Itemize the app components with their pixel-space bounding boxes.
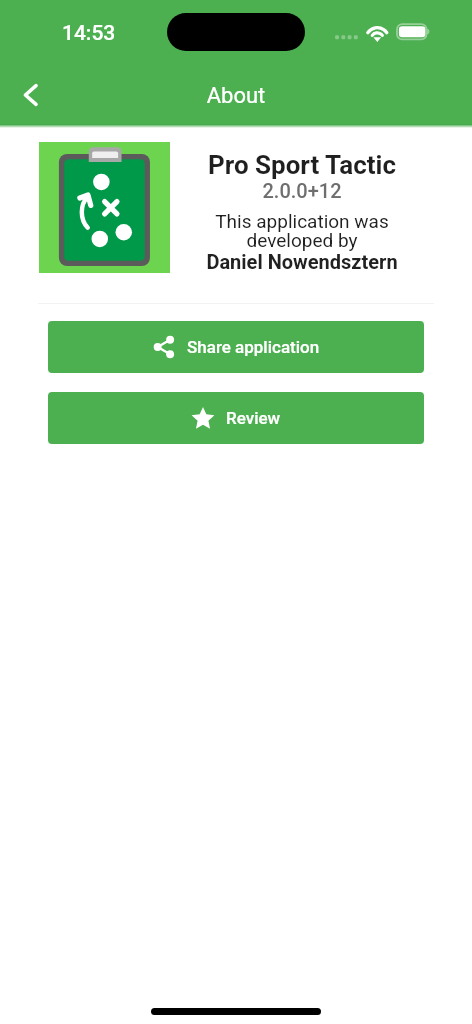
staticText: Pro Sport Tactic — [186, 150, 418, 180]
staticText: This application was developed by — [186, 210, 418, 252]
staticText: 14:53 — [62, 21, 116, 46]
staticText: About — [0, 83, 472, 109]
staticText: 2.0.0+12 — [186, 179, 418, 202]
button[interactable]: Back — [7, 71, 55, 119]
button[interactable]: Review — [48, 392, 424, 444]
staticText: Daniel Nowendsztern — [186, 250, 418, 273]
button[interactable]: Share application — [48, 321, 424, 373]
staticText: Review — [226, 408, 281, 428]
staticText: Share application — [187, 337, 320, 357]
